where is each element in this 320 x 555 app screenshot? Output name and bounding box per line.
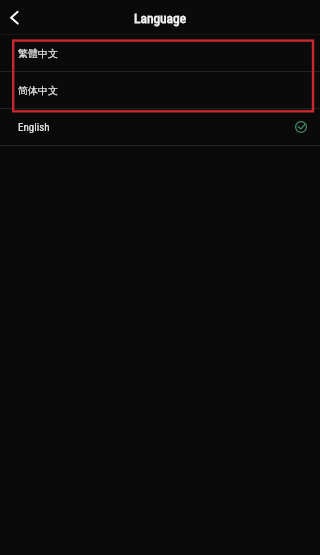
button[interactable]: 简体中文 [0,72,320,109]
staticText: Language [134,10,187,26]
button[interactable]: Back [0,0,34,34]
button[interactable]: English [0,109,320,146]
button[interactable]: 繁體中文 [0,35,320,72]
staticText: 繁體中文 [18,47,58,60]
staticText: 简体中文 [18,84,58,97]
staticText: English [18,121,50,134]
other: Selected [295,121,307,133]
